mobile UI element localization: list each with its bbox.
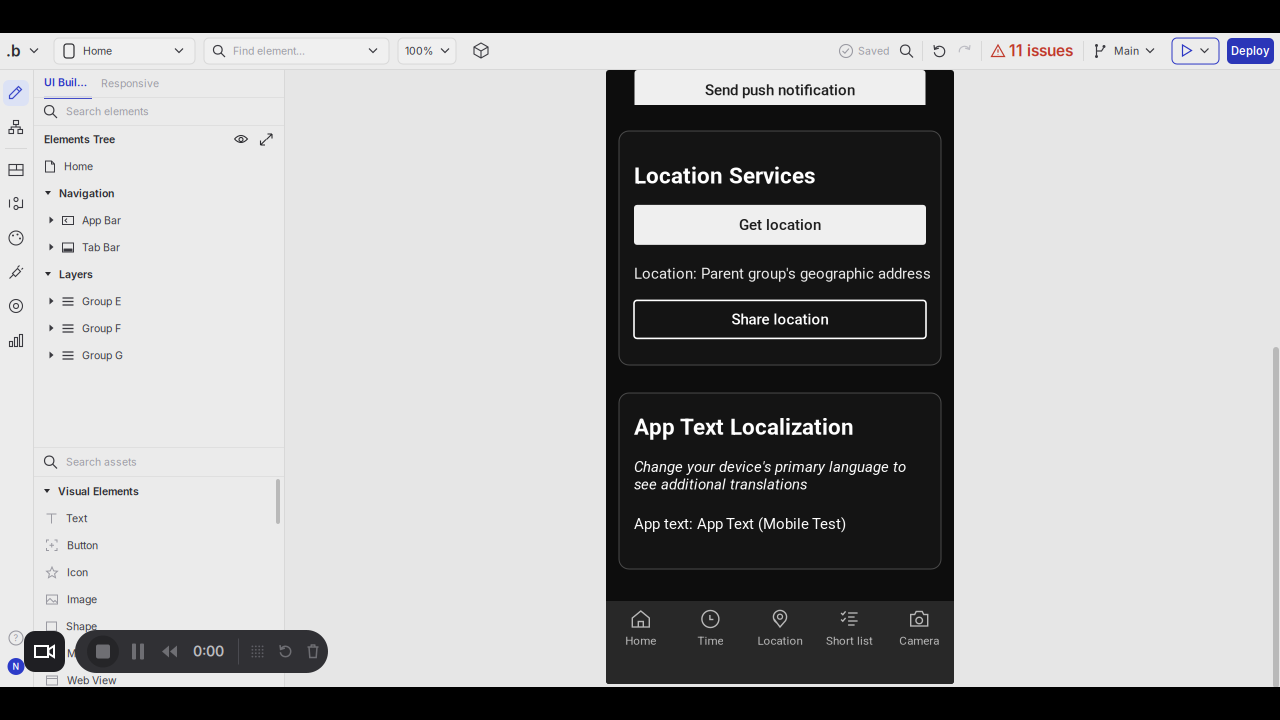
staticText: Camera	[899, 634, 939, 648]
button[interactable]: Group G	[34, 342, 284, 369]
staticText: Location	[757, 634, 802, 648]
staticText: Tab Bar	[82, 241, 120, 254]
button[interactable]: Stop recording	[87, 635, 119, 667]
staticText: Group E	[82, 295, 121, 308]
staticText: Group F	[82, 322, 121, 335]
button[interactable]: Data	[3, 191, 29, 217]
button[interactable]: Redo	[957, 43, 972, 58]
button[interactable]: Pause	[131, 642, 145, 660]
staticText: Elements Tree	[44, 133, 115, 146]
button[interactable]: Toggle visibility	[234, 133, 248, 145]
button[interactable]: Map	[34, 640, 284, 667]
button[interactable]: Home	[606, 601, 676, 684]
staticText: Button	[67, 539, 98, 552]
staticText: Search assets	[66, 456, 137, 468]
button[interactable]: Group F	[34, 315, 284, 342]
staticText: Main	[1114, 45, 1139, 57]
button[interactable]: Main	[1094, 44, 1155, 58]
button[interactable]: Search elements	[34, 98, 284, 125]
button[interactable]: Responsive	[101, 70, 159, 97]
staticText: Saved	[858, 45, 889, 57]
staticText: 100%	[405, 45, 433, 57]
staticText: Home	[625, 634, 656, 648]
staticText: Shape	[66, 620, 97, 633]
staticText: Short list	[826, 634, 873, 648]
staticText: Location: Parent group's geographic addr…	[634, 265, 931, 282]
button[interactable]: Restart	[279, 644, 292, 658]
button[interactable]: Home	[34, 153, 284, 180]
button[interactable]: Search assets	[34, 448, 284, 476]
button[interactable]: Home	[54, 38, 195, 64]
button[interactable]: Find element...	[204, 38, 389, 64]
button[interactable]: Design	[3, 80, 29, 106]
button[interactable]: Settings	[3, 293, 29, 319]
button[interactable]: Button	[34, 532, 284, 559]
button[interactable]: Camera	[884, 601, 954, 684]
staticText: Home	[64, 160, 93, 173]
staticText: Deploy	[1231, 44, 1270, 58]
staticText: Change your device's primary language to…	[634, 458, 906, 493]
button[interactable]: Account	[7, 658, 24, 675]
button[interactable]: Drag handle	[251, 645, 264, 658]
staticText: Get location	[739, 216, 821, 234]
staticText: Time	[697, 634, 723, 648]
button[interactable]: Deploy	[1227, 38, 1274, 64]
staticText: Location Services	[634, 163, 816, 189]
staticText: Image	[67, 593, 97, 606]
staticText: Web View	[67, 674, 117, 687]
button[interactable]: Layouts	[3, 157, 29, 183]
button[interactable]: Tab Bar	[34, 234, 284, 261]
staticText: Navigation	[59, 187, 114, 200]
button[interactable]: UI Builder	[44, 70, 92, 97]
button[interactable]: Search	[900, 44, 913, 57]
button[interactable]: Send push notification	[634, 70, 925, 110]
staticText: Search elements	[66, 105, 149, 118]
button[interactable]: Integrations	[3, 259, 29, 285]
button[interactable]: Text	[34, 505, 284, 532]
button[interactable]: App Bar	[34, 207, 284, 234]
button[interactable]: Screen recorder	[24, 631, 65, 672]
staticText: Responsive	[101, 77, 159, 90]
button[interactable]: Group E	[34, 288, 284, 315]
staticText: Send push notification	[705, 81, 855, 99]
button[interactable]: Help	[4, 626, 28, 650]
button[interactable]: Visual Elements	[34, 478, 284, 505]
button[interactable]: Workspace menu	[6, 42, 39, 60]
staticText: .b	[6, 42, 21, 60]
button[interactable]: Image	[34, 586, 284, 613]
staticText: N	[12, 661, 19, 672]
button[interactable]: Expand all	[260, 133, 273, 145]
button[interactable]: Share location	[634, 300, 926, 338]
staticText: Share location	[731, 310, 828, 328]
button[interactable]: Time	[676, 601, 745, 684]
staticText: Map	[67, 647, 89, 660]
button[interactable]: 11 issues	[991, 42, 1073, 60]
staticText: Group G	[82, 349, 123, 362]
staticText: App Bar	[82, 214, 121, 227]
button[interactable]: Preview	[1172, 38, 1219, 64]
button[interactable]: Location	[745, 601, 815, 684]
button[interactable]: Rewind	[162, 645, 177, 657]
button[interactable]: Undo	[932, 43, 947, 58]
button[interactable]: Structure	[3, 114, 29, 140]
staticText: Find element...	[233, 45, 305, 57]
staticText: UI Builder	[44, 76, 92, 89]
button[interactable]: Icon	[34, 559, 284, 586]
button[interactable]: 100%	[398, 38, 456, 64]
button[interactable]: Layers	[34, 261, 284, 288]
button[interactable]: Analytics	[3, 327, 29, 353]
button[interactable]: Web View	[34, 667, 284, 694]
button[interactable]: Get location	[634, 205, 926, 245]
button[interactable]: Navigation	[34, 180, 284, 207]
button[interactable]: Theme	[3, 225, 29, 251]
staticText: Visual Elements	[58, 485, 139, 498]
button[interactable]: Short list	[815, 601, 884, 684]
staticText: Text	[66, 512, 87, 525]
staticText: 11 issues	[1009, 41, 1073, 60]
staticText: App Text Localization	[634, 414, 854, 440]
button[interactable]: Delete recording	[307, 644, 319, 659]
staticText: Layers	[59, 268, 93, 281]
button[interactable]: Shape	[34, 613, 284, 640]
button[interactable]: 3D view	[474, 43, 489, 59]
button[interactable]: Saved	[839, 44, 889, 58]
